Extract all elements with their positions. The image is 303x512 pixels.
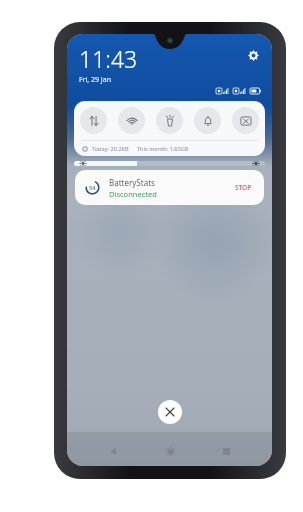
button[interactable]: 54: [75, 170, 264, 205]
button[interactable]: Home: [159, 440, 181, 462]
staticText: This month: 1.63GB: [137, 145, 189, 153]
button[interactable]: Sound: [194, 107, 221, 134]
staticText: Fri, 29 Jan: [79, 75, 112, 85]
button[interactable]: Mobile data: [80, 107, 107, 134]
staticText: Today: 20.2KB: [92, 145, 129, 153]
button[interactable]: Flashlight: [156, 107, 183, 134]
button[interactable]: Screenshot: [232, 107, 259, 134]
staticText: 54: [89, 184, 96, 191]
button[interactable]: STOP: [232, 180, 255, 195]
button[interactable]: Wi-Fi: [118, 107, 145, 134]
button[interactable]: Back: [102, 440, 124, 462]
staticText: Disconnected: [109, 189, 157, 199]
button[interactable]: Settings: [244, 46, 262, 64]
button[interactable]: Brightness: [74, 161, 265, 166]
button[interactable]: Clear all notifications: [158, 400, 182, 424]
button[interactable]: Today: 20.2KB: [74, 141, 265, 156]
staticText: BatteryStats: [109, 177, 155, 188]
staticText: 11:43: [79, 43, 138, 74]
staticText: STOP: [235, 183, 252, 192]
button[interactable]: Recents: [215, 440, 237, 462]
